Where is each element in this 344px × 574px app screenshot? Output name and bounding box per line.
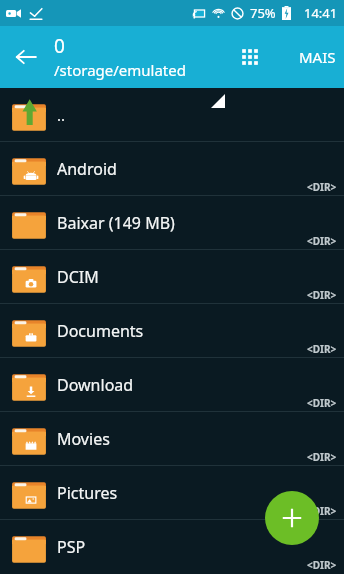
staticText: MAIS xyxy=(299,47,336,67)
button[interactable]: Add xyxy=(265,491,319,545)
button[interactable]: .. xyxy=(0,88,344,141)
staticText: <DIR> xyxy=(307,396,337,410)
staticText: .. xyxy=(57,105,66,125)
staticText: /storage/emulated xyxy=(54,60,186,80)
staticText: Pictures xyxy=(57,482,118,504)
staticText: <DIR> xyxy=(307,288,337,302)
staticText: PSP xyxy=(57,536,86,558)
button[interactable]: Pictures xyxy=(0,466,344,519)
staticText: <DIR> xyxy=(307,234,337,248)
staticText: Documents xyxy=(57,320,144,342)
staticText: 14:41 xyxy=(304,4,338,22)
staticText: Android xyxy=(57,158,117,180)
button[interactable]: View mode xyxy=(230,37,270,77)
staticText: 0 xyxy=(54,33,65,59)
staticText: Baixar (149 MB) xyxy=(57,212,175,234)
button[interactable]: Documents xyxy=(0,304,344,357)
staticText: Movies xyxy=(57,428,110,450)
button[interactable]: PSP xyxy=(0,520,344,573)
button[interactable]: MAIS xyxy=(299,37,336,77)
button[interactable]: DCIM xyxy=(0,250,344,303)
staticText: <DIR> xyxy=(307,180,337,194)
staticText: <DIR> xyxy=(307,504,337,518)
button[interactable]: Movies xyxy=(0,412,344,465)
staticText: <DIR> xyxy=(307,342,337,356)
staticText: <DIR> xyxy=(307,450,337,464)
staticText: <DIR> xyxy=(307,558,337,572)
button[interactable]: Android xyxy=(0,142,344,195)
staticText: DCIM xyxy=(57,266,99,288)
staticText: Download xyxy=(57,374,134,396)
button[interactable]: Back xyxy=(6,37,46,77)
button[interactable]: Download xyxy=(0,358,344,411)
button[interactable]: Baixar (149 MB) xyxy=(0,196,344,249)
staticText: 75% xyxy=(250,4,276,22)
